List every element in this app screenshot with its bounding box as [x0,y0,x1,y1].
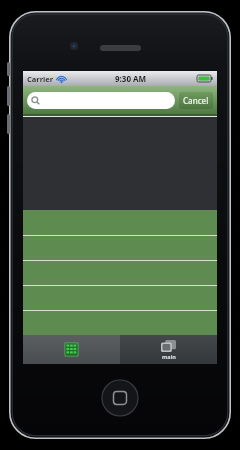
button[interactable] [23,285,217,310]
staticText: main [162,353,176,360]
button[interactable] [23,235,217,260]
button[interactable]: Calculator tab [23,335,120,364]
staticText: Cancel [183,95,209,106]
staticText: Carrier [27,74,54,84]
button[interactable] [23,260,217,285]
staticText: 9:30 AM [115,73,147,84]
button[interactable] [23,310,217,335]
button[interactable]: main [120,335,217,364]
button[interactable]: Cancel [183,92,209,109]
button[interactable] [27,92,175,109]
